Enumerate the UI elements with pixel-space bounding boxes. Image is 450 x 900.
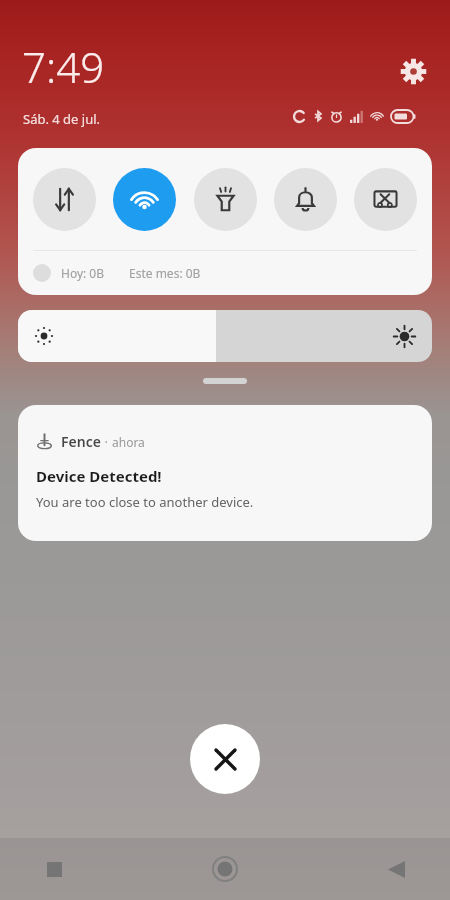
button[interactable]: Home [201,845,249,893]
button[interactable]: Flashlight [194,168,257,231]
staticText: You are too close to another device. [36,493,254,511]
staticText: Fence [61,432,101,451]
staticText: ahora [112,434,145,450]
staticText: Este mes: 0B [129,265,201,281]
button[interactable]: Fence [18,405,432,541]
button[interactable]: Hoy: 0B [18,251,432,295]
staticText: Device Detected! [36,466,162,486]
button[interactable]: Settings [399,57,428,86]
button[interactable]: Close [190,724,260,794]
button[interactable]: Recents [30,845,78,893]
staticText: Sáb. 4 de jul. [23,110,101,128]
button[interactable]: Screenshot [354,168,417,231]
staticText: 7:49 [22,38,105,95]
button[interactable]: Do not disturb [274,168,337,231]
staticText: Hoy: 0B [61,265,105,281]
button[interactable]: Back [372,845,420,893]
button[interactable]: Wi-Fi [113,168,176,231]
staticText: · [101,433,112,451]
button[interactable]: Mobile data [33,168,96,231]
button[interactable]: Brightness [18,310,432,362]
